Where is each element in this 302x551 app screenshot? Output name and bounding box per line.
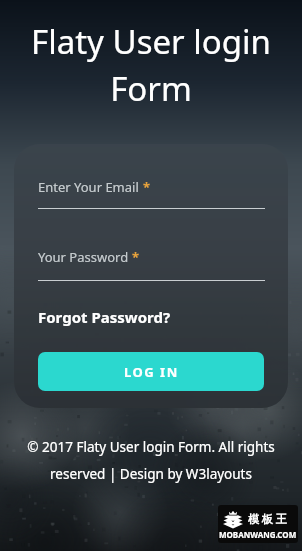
button[interactable]: 模 板 王 bbox=[218, 505, 298, 543]
staticText: Your Password bbox=[38, 248, 132, 266]
staticText: Enter Your Email bbox=[38, 178, 143, 196]
button[interactable]: Forgot Password? bbox=[38, 307, 171, 327]
staticText: LOG IN bbox=[124, 363, 179, 381]
staticText: MOBANWANG.COM bbox=[219, 529, 297, 540]
staticText: © 2017 Flaty User login Form. All rights… bbox=[0, 438, 302, 483]
staticText: Flaty User login Form bbox=[0, 19, 302, 111]
button[interactable]: LOG IN bbox=[38, 352, 264, 391]
staticText: * bbox=[132, 248, 140, 266]
staticText: 模 板 王 bbox=[248, 511, 287, 526]
staticText: * bbox=[143, 178, 151, 196]
